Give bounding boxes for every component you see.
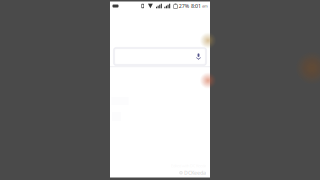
button[interactable]: Search [114, 48, 206, 65]
staticText: am [202, 3, 208, 9]
staticText: DCKeeda [184, 169, 206, 176]
staticText: 27% [179, 2, 189, 10]
staticText: 8:01 [191, 2, 201, 10]
